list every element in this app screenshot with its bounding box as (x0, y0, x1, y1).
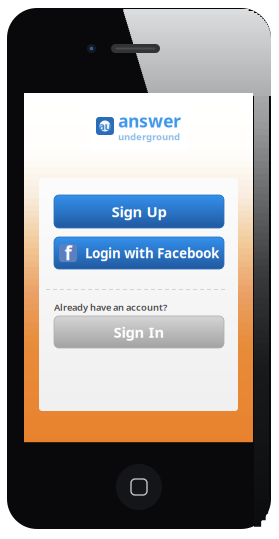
staticText: Login with Facebook (85, 244, 219, 262)
button[interactable]: Sign Up (54, 195, 224, 228)
staticText: Already have an account? (54, 301, 167, 313)
button[interactable]: f (54, 237, 224, 269)
staticText: f (64, 241, 71, 265)
staticText: Sign In (113, 322, 164, 342)
button[interactable]: Sign In (54, 316, 224, 348)
staticText: Sign Up (111, 202, 166, 221)
staticText: answer (118, 109, 181, 132)
staticText: au (98, 119, 111, 133)
staticText: underground (118, 130, 180, 143)
